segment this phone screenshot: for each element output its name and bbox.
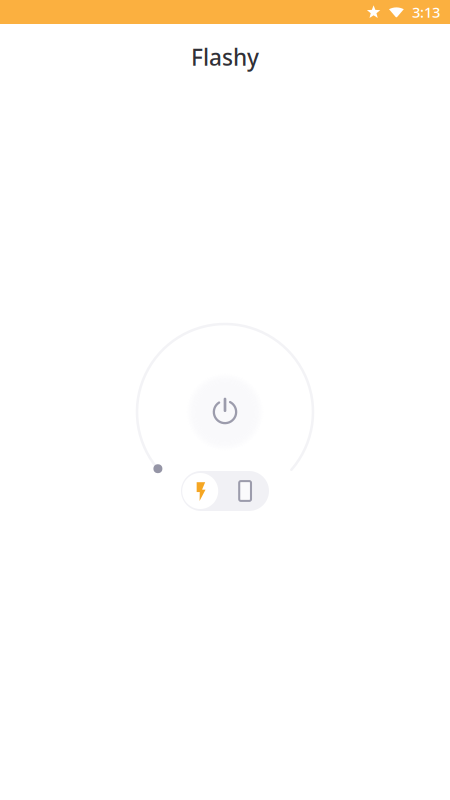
button[interactable]: Power: [188, 375, 262, 449]
staticText: 3:13: [412, 2, 440, 22]
button[interactable]: Flash mode: [180, 471, 220, 511]
staticText: Flashy: [191, 42, 259, 72]
button[interactable]: Screen mode: [223, 471, 267, 511]
